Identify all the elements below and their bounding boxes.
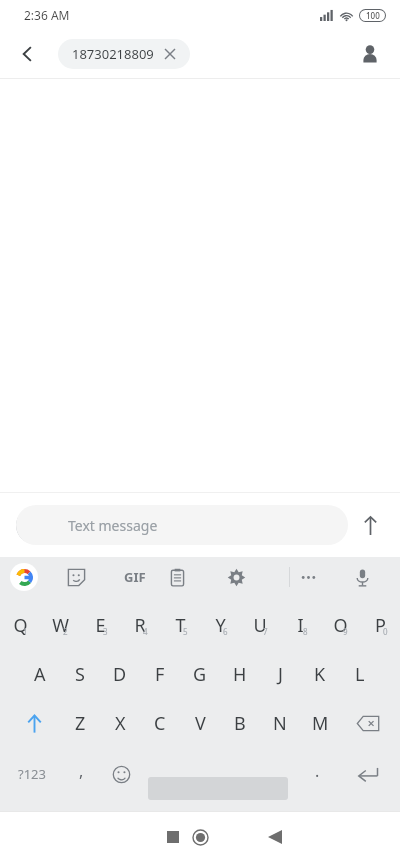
button[interactable]: Clipboard [160, 560, 194, 594]
staticText: G [193, 662, 207, 687]
button[interactable]: M [300, 699, 340, 748]
staticText: . [315, 760, 320, 782]
button[interactable]: More options [291, 560, 325, 594]
staticText: 3 [103, 626, 108, 637]
button[interactable]: A [20, 650, 60, 699]
staticText: V [195, 711, 206, 736]
button[interactable]: G [180, 650, 220, 699]
button[interactable]: Back [10, 36, 46, 72]
staticText: 8 [303, 626, 308, 637]
staticText: D [113, 662, 127, 687]
staticText: ?123 [18, 765, 46, 783]
button[interactable]: N [260, 699, 300, 748]
staticText: F [155, 662, 165, 687]
staticText: N [273, 711, 287, 736]
staticText: Q [13, 613, 28, 638]
staticText: C [154, 711, 166, 736]
button[interactable]: J [260, 650, 300, 699]
staticText: H [233, 662, 247, 687]
button[interactable]: W [40, 601, 80, 650]
staticText: P [375, 613, 386, 638]
staticText: K [314, 662, 326, 687]
button[interactable]: S [60, 650, 100, 699]
staticText: GIF [124, 568, 146, 586]
staticText: Text message [68, 516, 158, 535]
button[interactable]: K [300, 650, 340, 699]
button[interactable]: Enter [346, 748, 390, 800]
button[interactable]: Shift [12, 699, 56, 748]
button[interactable]: R [120, 601, 160, 650]
button[interactable]: Recent apps [151, 815, 195, 859]
button[interactable]: Z [60, 699, 100, 748]
staticText: Y [215, 613, 226, 638]
button[interactable]: E [80, 601, 120, 650]
button[interactable]: Send [352, 507, 388, 543]
button[interactable]: Settings [219, 560, 253, 594]
button[interactable]: Contact details [352, 36, 388, 72]
button[interactable]: B [220, 699, 260, 748]
button[interactable]: Home [178, 815, 222, 859]
button[interactable]: . [300, 748, 334, 800]
button[interactable]: D [100, 650, 140, 699]
button[interactable]: Stickers [59, 560, 93, 594]
staticText: 2:36 AM [24, 7, 70, 23]
button[interactable]: H [220, 650, 260, 699]
staticText: E [95, 613, 106, 638]
button[interactable]: GIF [118, 560, 152, 594]
staticText: 100 [366, 10, 380, 21]
staticText: J [278, 662, 283, 687]
button[interactable]: Voice input [345, 560, 379, 594]
button[interactable]: Text message [16, 505, 348, 545]
staticText: 7 [263, 626, 268, 637]
staticText: L [355, 662, 365, 687]
button[interactable]: , [64, 748, 98, 800]
button[interactable]: Google [10, 563, 38, 591]
staticText: W [52, 613, 69, 638]
staticText: R [134, 613, 146, 638]
staticText: Z [75, 711, 86, 736]
staticText: 6 [223, 626, 228, 637]
staticText: , [79, 760, 84, 782]
button[interactable]: Emoji [104, 748, 138, 800]
button[interactable]: Back [253, 815, 297, 859]
button[interactable]: GIF [117, 560, 151, 594]
staticText: 0 [383, 626, 388, 637]
staticText: B [234, 711, 246, 736]
staticText: 9 [343, 626, 348, 637]
button[interactable]: P [360, 601, 400, 650]
staticText: 2 [63, 626, 68, 637]
button[interactable]: X [100, 699, 140, 748]
staticText: 18730218809 [72, 45, 154, 63]
button[interactable]: Q [0, 601, 40, 650]
staticText: 5 [183, 626, 188, 637]
staticText: M [312, 711, 329, 736]
staticText: X [115, 711, 126, 736]
staticText: 4 [143, 626, 148, 637]
button[interactable]: 18730218809 [58, 39, 190, 69]
button[interactable]: C [140, 699, 180, 748]
button[interactable]: Y [200, 601, 240, 650]
button[interactable]: U [240, 601, 280, 650]
button[interactable]: F [140, 650, 180, 699]
button[interactable]: I [280, 601, 320, 650]
staticText: S [75, 662, 85, 687]
staticText: T [175, 613, 186, 638]
button[interactable]: ?123 [8, 748, 56, 800]
staticText: O [333, 613, 348, 638]
staticText: 1 [23, 626, 28, 637]
button[interactable]: Backspace [346, 699, 390, 748]
staticText: I [297, 613, 304, 638]
button[interactable]: V [180, 699, 220, 748]
staticText: U [253, 613, 267, 638]
button[interactable]: T [160, 601, 200, 650]
button[interactable]: O [320, 601, 360, 650]
staticText: A [34, 662, 46, 687]
button[interactable]: L [340, 650, 380, 699]
